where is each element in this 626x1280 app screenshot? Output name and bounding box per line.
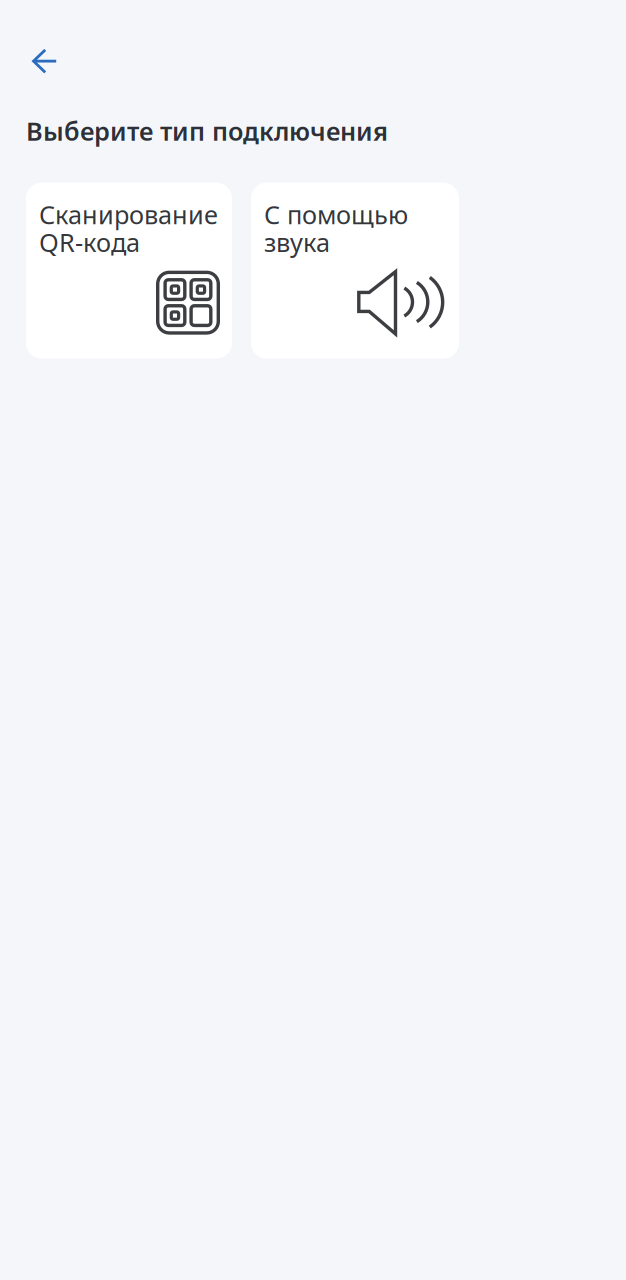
button[interactable]: С помощью (251, 183, 459, 359)
staticText: Сканирование (39, 198, 218, 231)
staticText: QR-кода (39, 225, 140, 259)
button[interactable]: Back (23, 39, 67, 83)
button[interactable]: Сканирование (26, 183, 232, 359)
staticText: Выберите тип подключения (26, 114, 388, 148)
staticText: звука (264, 225, 330, 259)
staticText: С помощью (264, 198, 408, 231)
